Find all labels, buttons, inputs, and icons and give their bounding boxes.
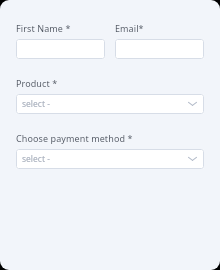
button[interactable]: Product select [16, 94, 204, 114]
button[interactable]: Choose payment method select [16, 149, 204, 169]
staticText: select - [22, 153, 188, 165]
button[interactable] [16, 39, 105, 59]
staticText: Email* [115, 22, 144, 34]
staticText: First Name * [16, 22, 71, 34]
button[interactable] [115, 39, 204, 59]
staticText: Choose payment method * [16, 132, 133, 144]
staticText: Product * [16, 77, 58, 89]
staticText: select - [22, 98, 188, 110]
